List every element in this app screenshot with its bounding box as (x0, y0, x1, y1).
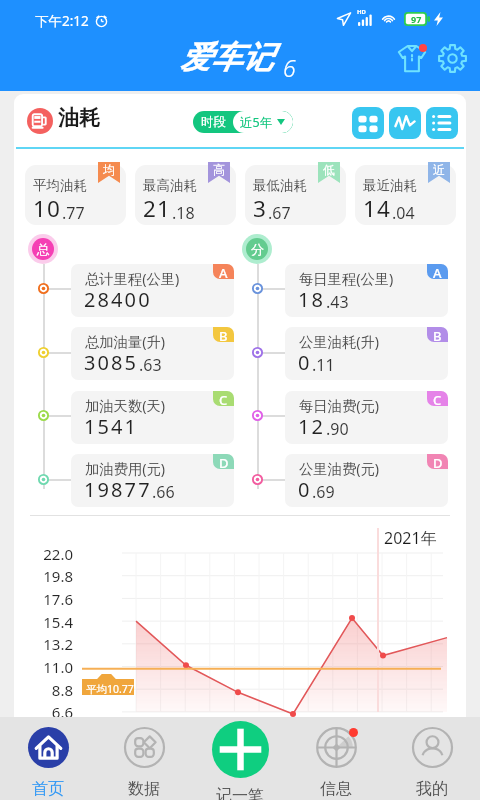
staticText: 最低油耗 (253, 177, 307, 194)
staticText: .69 (312, 481, 335, 503)
button[interactable]: 每日油费(元) (285, 391, 448, 444)
staticText: B (433, 327, 442, 342)
staticText: 10 (33, 193, 62, 224)
staticText: 最近油耗 (363, 177, 417, 194)
staticText: 19.8 (15, 566, 73, 586)
staticText: 15.4 (15, 612, 73, 632)
button[interactable]: 数据 (96, 717, 192, 800)
staticText: 数据 (128, 779, 160, 799)
button[interactable]: 记一笔 (192, 717, 288, 800)
button[interactable]: 公里油费(元) (285, 454, 448, 507)
staticText: 近5年 (240, 114, 273, 131)
button[interactable]: Grid view (352, 107, 384, 139)
button[interactable]: 平均油耗 (25, 165, 126, 225)
button[interactable]: 我的 (384, 717, 480, 800)
staticText: 加油天数(天) (85, 396, 166, 416)
staticText: 时段 (201, 114, 226, 130)
staticText: 近 (433, 162, 445, 177)
button[interactable]: 最高油耗 (135, 165, 236, 225)
staticText: D (219, 454, 229, 469)
button[interactable]: 总 (28, 234, 58, 264)
staticText: 18 (298, 286, 326, 313)
staticText: 6 (283, 52, 296, 83)
staticText: B (219, 327, 228, 342)
staticText: 我的 (416, 779, 448, 799)
staticText: 每日里程(公里) (299, 269, 394, 289)
staticText: D (433, 454, 443, 469)
staticText: 0 (298, 349, 312, 376)
staticText: .66 (152, 481, 175, 503)
staticText: 总加油量(升) (85, 332, 166, 352)
staticText: 每日油费(元) (299, 396, 380, 416)
staticText: 28400 (84, 286, 152, 313)
button[interactable]: 最低油耗 (245, 165, 346, 225)
staticText: A (433, 264, 442, 279)
staticText: .63 (139, 354, 162, 376)
staticText: 21 (143, 193, 172, 224)
staticText: .90 (326, 418, 349, 440)
staticText: 2021年 (384, 527, 437, 549)
staticText: 油耗 (58, 105, 100, 131)
staticText: 6.6 (15, 702, 73, 718)
button[interactable]: 加油费用(元) (71, 454, 234, 507)
staticText: .67 (268, 202, 291, 224)
staticText: 12 (298, 413, 326, 440)
staticText: 记一笔 (216, 786, 264, 800)
staticText: 总 (37, 241, 50, 257)
button[interactable]: 公里油耗(升) (285, 327, 448, 380)
button[interactable]: 最近油耗 (355, 165, 456, 225)
staticText: 1541 (84, 413, 139, 440)
button[interactable]: 加油天数(天) (71, 391, 234, 444)
staticText: 首页 (32, 779, 64, 799)
staticText: 0 (298, 476, 312, 503)
staticText: 13.2 (15, 634, 73, 654)
button[interactable]: List view (426, 107, 458, 139)
staticText: 19877 (84, 476, 152, 503)
staticText: 3085 (84, 349, 139, 376)
staticText: .43 (326, 291, 349, 313)
staticText: 公里油费(元) (299, 459, 380, 479)
staticText: 低 (323, 162, 335, 177)
staticText: .04 (392, 202, 415, 224)
button[interactable]: Theme (392, 38, 432, 78)
button[interactable]: 总加油量(升) (71, 327, 234, 380)
staticText: 最高油耗 (143, 177, 197, 194)
staticText: 信息 (320, 779, 352, 799)
staticText: HD (357, 8, 366, 16)
staticText: 97 (411, 13, 422, 25)
staticText: 均 (103, 162, 115, 177)
button[interactable]: 总计里程(公里) (71, 264, 234, 317)
button[interactable]: 首页 (0, 717, 96, 800)
staticText: C (219, 391, 228, 406)
staticText: 爱车记 (180, 38, 273, 77)
button[interactable]: 时段 (193, 111, 293, 133)
staticText: .18 (172, 202, 195, 224)
staticText: 8.8 (15, 680, 73, 700)
staticText: 平均10.77 (86, 682, 134, 696)
staticText: C (433, 391, 442, 406)
button[interactable]: 信息 (288, 717, 384, 800)
button[interactable]: 分 (242, 234, 272, 264)
staticText: 公里油耗(升) (299, 332, 380, 352)
button[interactable]: 每日里程(公里) (285, 264, 448, 317)
staticText: 下午2:12 (35, 12, 89, 30)
button[interactable]: Fuel (27, 108, 53, 134)
staticText: 11.0 (15, 657, 73, 677)
staticText: 分 (251, 241, 264, 257)
button[interactable]: Settings (432, 38, 472, 78)
staticText: 22.0 (15, 544, 73, 564)
staticText: 14 (363, 193, 392, 224)
staticText: .77 (62, 202, 85, 224)
staticText: A (219, 264, 228, 279)
staticText: 3 (253, 193, 268, 224)
staticText: 加油费用(元) (85, 459, 166, 479)
staticText: 平均油耗 (33, 177, 87, 194)
staticText: 总计里程(公里) (85, 269, 180, 289)
button[interactable]: Chart view (389, 107, 421, 139)
staticText: 17.6 (15, 589, 73, 609)
staticText: .11 (312, 354, 335, 376)
staticText: 高 (213, 162, 225, 177)
